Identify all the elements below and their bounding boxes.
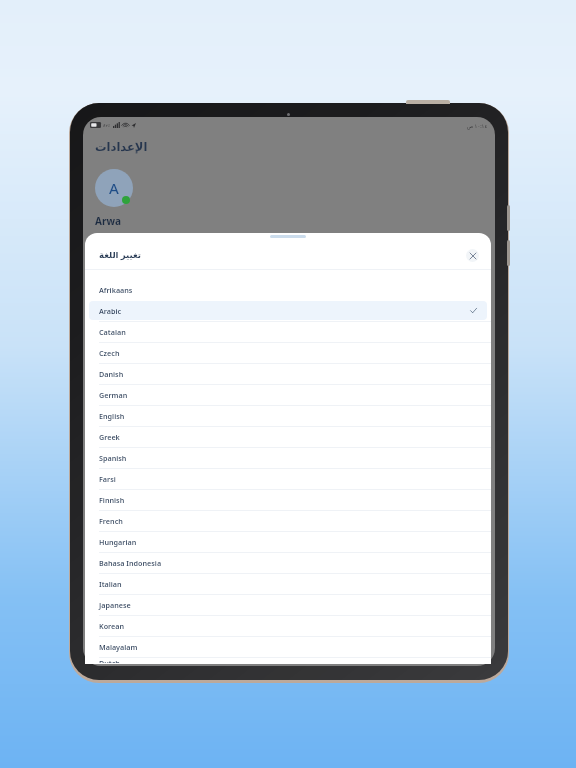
- button[interactable]: Korean: [89, 616, 487, 635]
- other: Power: [406, 100, 450, 104]
- button[interactable]: Dutch: [89, 658, 487, 663]
- staticText: Korean: [99, 621, 477, 631]
- staticText: Finnish: [99, 495, 477, 505]
- button[interactable]: German: [89, 385, 487, 404]
- button[interactable]: Italian: [89, 574, 487, 593]
- staticText: Greek: [99, 432, 477, 442]
- button[interactable]: Farsi: [89, 469, 487, 488]
- button[interactable]: Czech: [89, 343, 487, 362]
- other: Volume down: [507, 240, 510, 266]
- button[interactable]: Close: [466, 249, 479, 262]
- button[interactable]: Catalan: [89, 322, 487, 341]
- staticText: German: [99, 390, 477, 400]
- button[interactable]: French: [89, 511, 487, 530]
- staticText: Hungarian: [99, 537, 477, 547]
- button[interactable]: Hungarian: [89, 532, 487, 551]
- staticText: ١٠:١٤ ص: [467, 122, 488, 129]
- staticText: Danish: [99, 369, 477, 379]
- button[interactable]: [270, 235, 306, 238]
- staticText: English: [99, 411, 477, 421]
- button[interactable]: Japanese: [89, 595, 487, 614]
- button[interactable]: Afrikaans: [89, 280, 487, 299]
- staticText: الإعدادات: [95, 140, 148, 153]
- staticText: Afrikaans: [99, 285, 477, 295]
- button[interactable]: Arabic: [89, 301, 487, 320]
- button[interactable]: Finnish: [89, 490, 487, 509]
- staticText: A: [109, 178, 119, 198]
- button[interactable]: Bahasa Indonesia: [89, 553, 487, 572]
- staticText: Catalan: [99, 327, 477, 337]
- staticText: Arabic: [99, 306, 470, 316]
- staticText: تغيير اللغة: [99, 249, 141, 261]
- staticText: ٨٢٪: [103, 123, 111, 128]
- button[interactable]: Greek: [89, 427, 487, 446]
- staticText: Czech: [99, 348, 477, 358]
- staticText: Japanese: [99, 600, 477, 610]
- staticText: Arwa: [95, 214, 121, 228]
- staticText: Bahasa Indonesia: [99, 558, 477, 568]
- button[interactable]: Danish: [89, 364, 487, 383]
- staticText: Farsi: [99, 474, 477, 484]
- button[interactable]: A: [95, 169, 133, 207]
- staticText: Spanish: [99, 453, 477, 463]
- staticText: Malayalam: [99, 642, 477, 652]
- other: Volume up: [507, 205, 510, 231]
- staticText: Dutch: [99, 658, 477, 663]
- button[interactable]: English: [89, 406, 487, 425]
- button[interactable]: Spanish: [89, 448, 487, 467]
- staticText: French: [99, 516, 477, 526]
- button[interactable]: Malayalam: [89, 637, 487, 656]
- staticText: Italian: [99, 579, 477, 589]
